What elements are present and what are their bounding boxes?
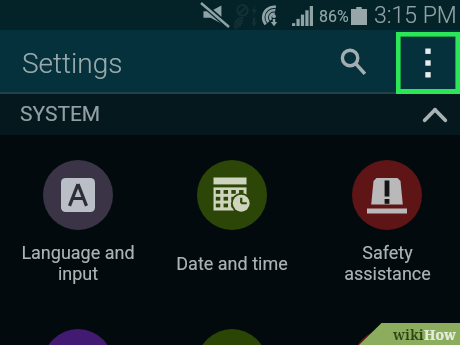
staticText: Settings xyxy=(22,47,123,80)
staticText: wiki xyxy=(393,325,424,344)
button[interactable] xyxy=(197,329,267,345)
button[interactable]: SYSTEM xyxy=(0,94,460,135)
staticText: 86% xyxy=(319,7,349,26)
other: Collapse xyxy=(423,108,447,122)
button[interactable] xyxy=(43,160,113,230)
button[interactable]: Search xyxy=(331,30,373,92)
button[interactable] xyxy=(352,329,422,345)
button[interactable]: Language and input xyxy=(3,241,153,285)
staticText: 3:15 PM xyxy=(374,2,457,29)
button[interactable]: More options xyxy=(396,32,460,94)
button[interactable] xyxy=(43,329,113,345)
button[interactable] xyxy=(197,160,267,230)
button[interactable]: Date and time xyxy=(157,241,307,285)
staticText: Language and input xyxy=(21,242,135,284)
staticText: SYSTEM xyxy=(20,102,101,127)
staticText: How xyxy=(424,325,457,344)
button[interactable]: Safety assistance xyxy=(312,241,460,285)
staticText: Safety assistance xyxy=(344,242,431,284)
button[interactable] xyxy=(352,160,422,230)
staticText: Date and time xyxy=(176,253,288,274)
